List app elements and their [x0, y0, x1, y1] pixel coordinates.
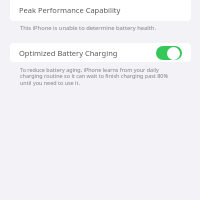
staticText: To reduce battery aging, iPhone learns f…: [20, 66, 176, 87]
staticText: Peak Performance Capability: [19, 5, 121, 15]
button[interactable]: Optimized Battery Charging, on: [156, 46, 182, 60]
button[interactable]: Peak Performance Capability: [10, 0, 191, 21]
staticText: Optimized Battery Charging: [19, 48, 118, 58]
staticText: This iPhone is unable to determine batte…: [20, 24, 157, 32]
button[interactable]: Optimized Battery Charging: [10, 43, 191, 62]
